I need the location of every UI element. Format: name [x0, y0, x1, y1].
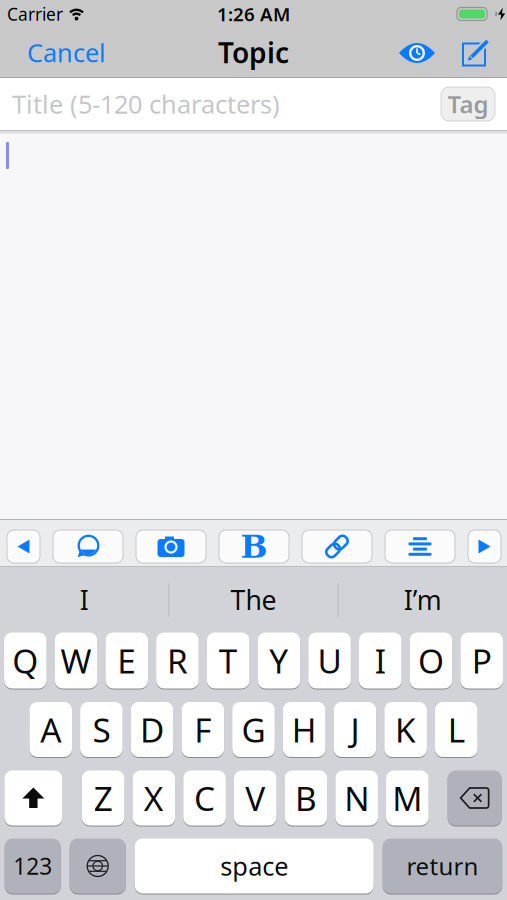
button[interactable]: H	[283, 702, 325, 757]
staticText: Y	[269, 638, 288, 683]
staticText: K	[395, 707, 416, 752]
button[interactable]: R	[156, 632, 199, 688]
staticText: 123	[13, 851, 52, 881]
button[interactable]: return	[383, 838, 502, 893]
button[interactable]: I	[359, 632, 401, 688]
staticText: B	[295, 776, 317, 820]
staticText: G	[241, 707, 265, 752]
button[interactable]: I	[0, 582, 168, 617]
staticText: Q	[12, 638, 38, 683]
button[interactable]	[70, 838, 126, 893]
button[interactable]: T	[207, 632, 249, 688]
staticText: U	[318, 638, 342, 683]
staticText: Topic	[218, 34, 289, 71]
staticText: P	[472, 638, 492, 683]
button[interactable]: P	[460, 632, 503, 688]
button[interactable]	[468, 530, 501, 563]
button[interactable]: I’m	[339, 582, 507, 617]
button[interactable]: K	[384, 702, 427, 757]
button[interactable]: Y	[257, 632, 300, 688]
staticText: Carrier	[7, 2, 63, 25]
staticText: D	[140, 707, 164, 752]
button[interactable]: Cancel	[27, 36, 106, 69]
button[interactable]: O	[410, 632, 452, 688]
button[interactable]: Z	[82, 770, 124, 825]
staticText: T	[219, 638, 238, 683]
button[interactable]	[385, 530, 455, 563]
staticText: The	[230, 582, 276, 617]
staticText: Tag	[447, 88, 488, 120]
staticText: W	[60, 638, 91, 683]
button[interactable]	[53, 530, 123, 563]
button[interactable]: Tag	[441, 87, 495, 121]
button[interactable]	[398, 40, 435, 65]
staticText: C	[194, 776, 215, 820]
staticText: I	[80, 582, 89, 617]
staticText: I	[375, 638, 386, 683]
button[interactable]: F	[181, 702, 224, 757]
button[interactable]: G	[232, 702, 275, 757]
staticText: N	[344, 776, 369, 820]
button[interactable]: The	[169, 582, 338, 617]
button[interactable]: space	[135, 838, 374, 893]
button[interactable]	[7, 530, 40, 563]
staticText: O	[418, 638, 444, 683]
staticText: X	[144, 776, 164, 820]
button[interactable]: D	[131, 702, 173, 757]
staticText: H	[292, 707, 317, 752]
button[interactable]: Q	[4, 632, 47, 688]
staticText: A	[40, 707, 61, 752]
button[interactable]	[448, 770, 502, 825]
button[interactable]: W	[55, 632, 97, 688]
button[interactable]: B	[219, 530, 289, 563]
button[interactable]	[4, 770, 62, 825]
button[interactable]: N	[335, 770, 378, 825]
button[interactable]: A	[29, 702, 72, 757]
staticText: return	[406, 850, 478, 882]
staticText: B	[240, 528, 267, 565]
staticText: I’m	[404, 582, 442, 617]
button[interactable]: 123	[5, 838, 61, 893]
staticText: E	[117, 638, 136, 683]
button[interactable]: V	[234, 770, 277, 825]
button[interactable]: L	[435, 702, 478, 757]
button[interactable]: B	[285, 770, 327, 825]
button[interactable]: U	[308, 632, 351, 688]
staticText: space	[220, 849, 288, 883]
staticText: J	[350, 707, 359, 752]
button[interactable]: J	[334, 702, 376, 757]
staticText: 1:26 AM	[217, 2, 290, 26]
staticText: S	[92, 707, 110, 752]
staticText: L	[448, 707, 465, 752]
button[interactable]: X	[133, 770, 175, 825]
button[interactable]: C	[183, 770, 226, 825]
staticText: Z	[94, 776, 113, 820]
staticText: F	[194, 707, 211, 752]
button[interactable]: M	[386, 770, 429, 825]
button[interactable]	[302, 530, 372, 563]
staticText: R	[167, 638, 188, 683]
staticText: M	[392, 776, 422, 820]
button[interactable]: S	[80, 702, 123, 757]
staticText: Title (5-120 characters)	[12, 87, 280, 121]
button[interactable]: E	[105, 632, 148, 688]
staticText: Cancel	[27, 36, 106, 69]
staticText: V	[245, 776, 265, 820]
button[interactable]	[461, 36, 493, 68]
button[interactable]	[136, 530, 206, 563]
